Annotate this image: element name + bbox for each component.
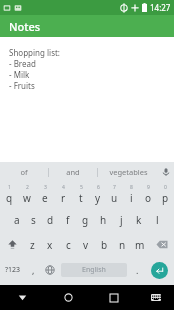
button[interactable]: k bbox=[130, 207, 148, 232]
staticText: r bbox=[61, 191, 66, 205]
button[interactable]: 1 bbox=[0, 182, 18, 207]
staticText: n bbox=[119, 238, 126, 252]
button[interactable]: g bbox=[76, 207, 94, 232]
staticText: z bbox=[30, 238, 35, 252]
staticText: b bbox=[101, 238, 108, 252]
button[interactable]: . bbox=[129, 257, 145, 283]
button[interactable]: a bbox=[8, 207, 25, 232]
staticText: 4 bbox=[62, 184, 65, 191]
staticText: - Bread bbox=[9, 58, 36, 69]
staticText: 5 bbox=[80, 184, 83, 191]
staticText: 1 bbox=[8, 184, 11, 191]
button[interactable]: Recent apps bbox=[91, 285, 137, 310]
button[interactable]: , bbox=[25, 257, 41, 283]
staticText: s bbox=[31, 213, 36, 227]
button[interactable]: d bbox=[42, 207, 59, 232]
button[interactable]: 9 bbox=[140, 182, 157, 207]
staticText: k bbox=[136, 213, 142, 227]
button[interactable]: Notes bbox=[0, 15, 174, 37]
staticText: 2 bbox=[26, 184, 29, 191]
button[interactable]: vegetables bbox=[98, 162, 158, 182]
button[interactable]: Enter bbox=[145, 257, 174, 283]
button[interactable]: English bbox=[61, 263, 127, 277]
staticText: o bbox=[145, 191, 152, 205]
button[interactable]: v bbox=[77, 232, 95, 257]
button[interactable]: 2 bbox=[18, 182, 36, 207]
button[interactable]: x bbox=[41, 232, 59, 257]
button[interactable]: m bbox=[131, 232, 149, 257]
staticText: x bbox=[47, 238, 53, 252]
button[interactable]: 0 bbox=[157, 182, 174, 207]
button[interactable]: of bbox=[0, 162, 48, 182]
staticText: a bbox=[14, 213, 20, 227]
button[interactable]: Change keyboard language bbox=[41, 257, 59, 283]
staticText: m bbox=[135, 238, 145, 252]
button[interactable]: Hide keyboard bbox=[137, 285, 174, 310]
button[interactable]: ?123 bbox=[0, 257, 25, 283]
staticText: p bbox=[162, 191, 169, 205]
staticText: . bbox=[136, 264, 139, 276]
staticText: d bbox=[47, 213, 54, 227]
staticText: Notes bbox=[9, 19, 41, 34]
button[interactable]: Back bbox=[0, 285, 45, 310]
staticText: 0 bbox=[164, 184, 167, 191]
staticText: u bbox=[111, 191, 118, 205]
staticText: w bbox=[23, 191, 31, 205]
button[interactable]: z bbox=[24, 232, 41, 257]
staticText: l bbox=[156, 213, 159, 227]
staticText: f bbox=[66, 213, 70, 227]
staticText: Shopping list: bbox=[9, 47, 61, 58]
staticText: y bbox=[95, 191, 101, 205]
staticText: ?123 bbox=[5, 265, 21, 275]
staticText: 7 bbox=[113, 184, 116, 191]
button[interactable]: 4 bbox=[54, 182, 72, 207]
button[interactable]: c bbox=[59, 232, 77, 257]
button[interactable]: Voice input bbox=[158, 162, 174, 182]
staticText: j bbox=[120, 213, 123, 227]
button[interactable]: f bbox=[59, 207, 76, 232]
staticText: 3 bbox=[44, 184, 47, 191]
staticText: English bbox=[82, 265, 106, 275]
staticText: and bbox=[66, 167, 80, 177]
button[interactable]: and bbox=[49, 162, 97, 182]
staticText: i bbox=[130, 191, 133, 205]
button[interactable]: b bbox=[95, 232, 113, 257]
button[interactable]: 7 bbox=[106, 182, 123, 207]
button[interactable]: 5 bbox=[72, 182, 89, 207]
staticText: 8 bbox=[130, 184, 133, 191]
staticText: vegetables bbox=[109, 167, 148, 177]
button[interactable]: 6 bbox=[89, 182, 106, 207]
button[interactable]: s bbox=[25, 207, 42, 232]
staticText: h bbox=[100, 213, 107, 227]
staticText: t bbox=[79, 191, 83, 205]
button[interactable]: Shift bbox=[0, 232, 24, 257]
button[interactable]: Home bbox=[45, 285, 91, 310]
button[interactable]: Backspace bbox=[149, 232, 174, 257]
button[interactable]: Shopping list: bbox=[0, 37, 174, 162]
staticText: v bbox=[83, 238, 89, 252]
staticText: of bbox=[20, 167, 28, 177]
staticText: 9 bbox=[147, 184, 150, 191]
staticText: e bbox=[42, 191, 48, 205]
staticText: c bbox=[66, 238, 71, 252]
staticText: g bbox=[82, 213, 89, 227]
button[interactable]: h bbox=[94, 207, 112, 232]
staticText: - Fruits bbox=[9, 80, 35, 91]
staticText: - Milk bbox=[9, 69, 30, 80]
staticText: q bbox=[6, 191, 13, 205]
button[interactable]: j bbox=[112, 207, 130, 232]
button[interactable]: 3 bbox=[36, 182, 54, 207]
staticText: , bbox=[32, 264, 35, 276]
button[interactable]: n bbox=[113, 232, 131, 257]
staticText: 6 bbox=[97, 184, 100, 191]
staticText: 14:27 bbox=[150, 2, 171, 13]
button[interactable]: l bbox=[148, 207, 166, 232]
button[interactable]: 8 bbox=[123, 182, 140, 207]
